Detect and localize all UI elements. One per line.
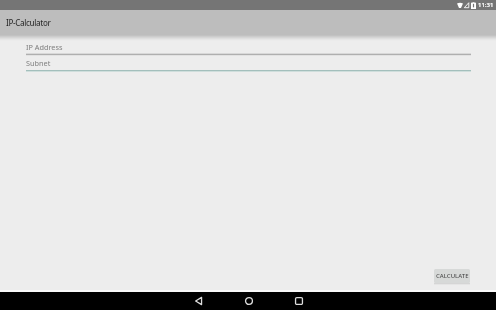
button[interactable]: Subnet bbox=[26, 58, 471, 70]
button[interactable]: IP Address bbox=[26, 42, 471, 54]
staticText: Subnet bbox=[26, 58, 51, 68]
staticText: IP Address bbox=[26, 42, 63, 52]
staticText: 11:31 bbox=[478, 1, 494, 9]
button[interactable]: CALCULATE bbox=[434, 269, 470, 283]
button[interactable]: Home bbox=[240, 292, 258, 310]
staticText: IP-Calculator bbox=[6, 17, 51, 28]
staticText: CALCULATE bbox=[436, 272, 469, 280]
button[interactable]: Back bbox=[190, 292, 208, 310]
button[interactable]: Recent apps bbox=[290, 292, 308, 310]
